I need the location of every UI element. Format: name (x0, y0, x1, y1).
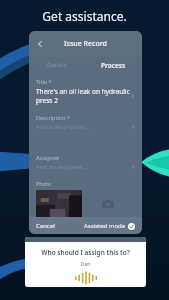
button[interactable]: Assisted mode (83, 220, 136, 232)
staticText: There's an oil leak on hydraulic press 2 (36, 87, 130, 105)
staticText: Photo (36, 180, 52, 187)
button[interactable]: Add a description... (36, 123, 136, 131)
staticText: Title * (36, 78, 52, 85)
staticText: Description * (36, 114, 71, 121)
staticText: Issue Record (64, 39, 107, 49)
staticText: Add a description... (36, 123, 130, 131)
button[interactable]: Process (85, 57, 142, 73)
staticText: Cancel (36, 222, 55, 230)
staticText: Who should I assign this to? (25, 248, 146, 257)
staticText: Details (47, 61, 67, 69)
staticText: Process (101, 61, 126, 70)
staticText: Assisted mode (84, 222, 126, 230)
button[interactable]: There's an oil leak on hydraulic press 2 (36, 87, 136, 105)
button[interactable]: Cancel (35, 220, 56, 232)
staticText: Add an assignee... (36, 163, 130, 171)
button[interactable]: Voice input (25, 271, 146, 285)
button[interactable]: Add an assignee... (36, 163, 136, 171)
button[interactable]: Back (32, 36, 48, 52)
staticText: Dan (25, 261, 146, 268)
button[interactable]: Details (29, 57, 85, 73)
staticText: Get assistance. (42, 8, 127, 24)
button[interactable]: Photo attachment (36, 190, 82, 217)
staticText: Assignee (36, 154, 60, 161)
button[interactable]: Take photo (99, 195, 117, 213)
